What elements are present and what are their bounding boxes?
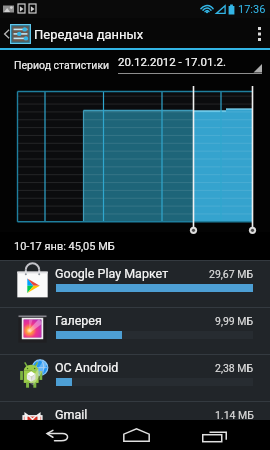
staticText: 10-17 янв: 45,05 МБ <box>14 240 115 253</box>
button[interactable]: More options <box>248 18 270 50</box>
button[interactable]: Recent apps <box>200 420 228 450</box>
staticText: 2,38 МБ <box>215 362 254 374</box>
button[interactable]: Gmail <box>0 401 270 421</box>
staticText: 17:36 <box>238 3 266 16</box>
staticText: Передача данных <box>34 27 144 42</box>
button[interactable]: 20.12.2012 - 17.01.2. <box>118 50 262 80</box>
button[interactable]: Back <box>44 420 70 450</box>
staticText: 20.12.2012 - 17.01.2. <box>118 55 227 68</box>
staticText: Google Play Маркет <box>55 266 169 281</box>
button[interactable]: Галерея <box>0 307 270 354</box>
button[interactable]: Home <box>122 420 150 450</box>
staticText: ОС Android <box>55 360 119 375</box>
button[interactable]: Передача данных <box>0 18 144 50</box>
button[interactable]: ОС Android <box>0 354 270 401</box>
staticText: Галерея <box>55 313 102 328</box>
staticText: 9,99 МБ <box>215 315 254 327</box>
staticText: Gmail <box>55 407 88 422</box>
staticText: 29,67 МБ <box>209 268 254 280</box>
staticText: 1.14 МБ <box>215 409 254 421</box>
staticText: Период статистики <box>14 59 110 71</box>
button[interactable]: Google Play Маркет <box>0 260 270 307</box>
